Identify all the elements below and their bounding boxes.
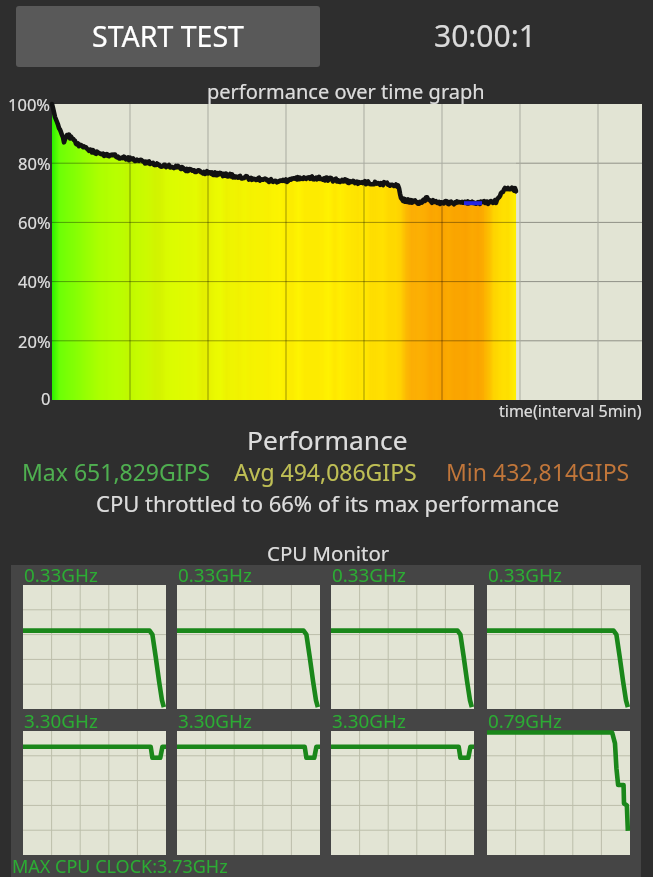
staticText: 100% bbox=[8, 93, 51, 115]
staticText: 3.30GHz bbox=[178, 708, 252, 734]
button[interactable]: Core 3 clock graph bbox=[331, 585, 474, 709]
staticText: 40% bbox=[18, 270, 51, 292]
staticText: 0.33GHz bbox=[488, 562, 562, 588]
button[interactable]: Core 1 clock graph bbox=[23, 585, 166, 709]
button[interactable]: Core 7 clock graph bbox=[331, 731, 474, 855]
staticText: 0 bbox=[41, 387, 51, 409]
staticText: 0.33GHz bbox=[178, 562, 252, 588]
staticText: Avg 494,086GIPS bbox=[234, 456, 417, 487]
button[interactable]: Core 5 clock graph bbox=[23, 731, 166, 855]
button[interactable]: START TEST bbox=[16, 6, 320, 67]
staticText: Performance bbox=[247, 422, 408, 458]
staticText: 30:00:1 bbox=[434, 15, 536, 56]
staticText: 0.33GHz bbox=[332, 562, 406, 588]
staticText: 20% bbox=[18, 330, 51, 352]
staticText: Max 651,829GIPS bbox=[22, 456, 211, 487]
staticText: 3.30GHz bbox=[332, 708, 406, 734]
staticText: time(interval 5min) bbox=[499, 400, 642, 422]
staticText: 3.30GHz bbox=[24, 708, 98, 734]
staticText: CPU Monitor bbox=[267, 539, 390, 567]
staticText: 0.79GHz bbox=[488, 708, 562, 734]
button[interactable]: Core 6 clock graph bbox=[177, 731, 320, 855]
button[interactable]: Core 4 clock graph bbox=[487, 585, 630, 709]
staticText: 60% bbox=[18, 211, 51, 233]
staticText: 0.33GHz bbox=[24, 562, 98, 588]
button[interactable]: Core 8 clock graph bbox=[487, 731, 630, 855]
button[interactable]: Performance over time chart bbox=[52, 104, 642, 400]
staticText: MAX CPU CLOCK:3.73GHz bbox=[12, 854, 228, 877]
staticText: Min 432,814GIPS bbox=[446, 456, 630, 487]
staticText: START TEST bbox=[92, 17, 244, 56]
staticText: performance over time graph bbox=[207, 78, 485, 105]
staticText: CPU throttled to 66% of its max performa… bbox=[96, 488, 560, 518]
button[interactable]: Core 2 clock graph bbox=[177, 585, 320, 709]
staticText: 80% bbox=[18, 152, 51, 174]
